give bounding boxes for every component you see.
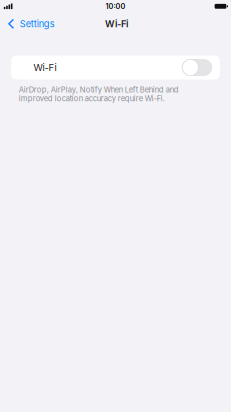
staticText: 10:00 — [105, 2, 125, 11]
staticText: AirDrop, AirPlay, Notify When Left Behin… — [19, 85, 179, 103]
staticText: Wi-Fi — [33, 62, 56, 73]
staticText: Settings — [20, 18, 55, 29]
staticText: Wi-Fi — [105, 18, 128, 29]
button[interactable]: Wi-Fi — [11, 55, 220, 79]
button[interactable]: Settings — [0, 15, 63, 32]
